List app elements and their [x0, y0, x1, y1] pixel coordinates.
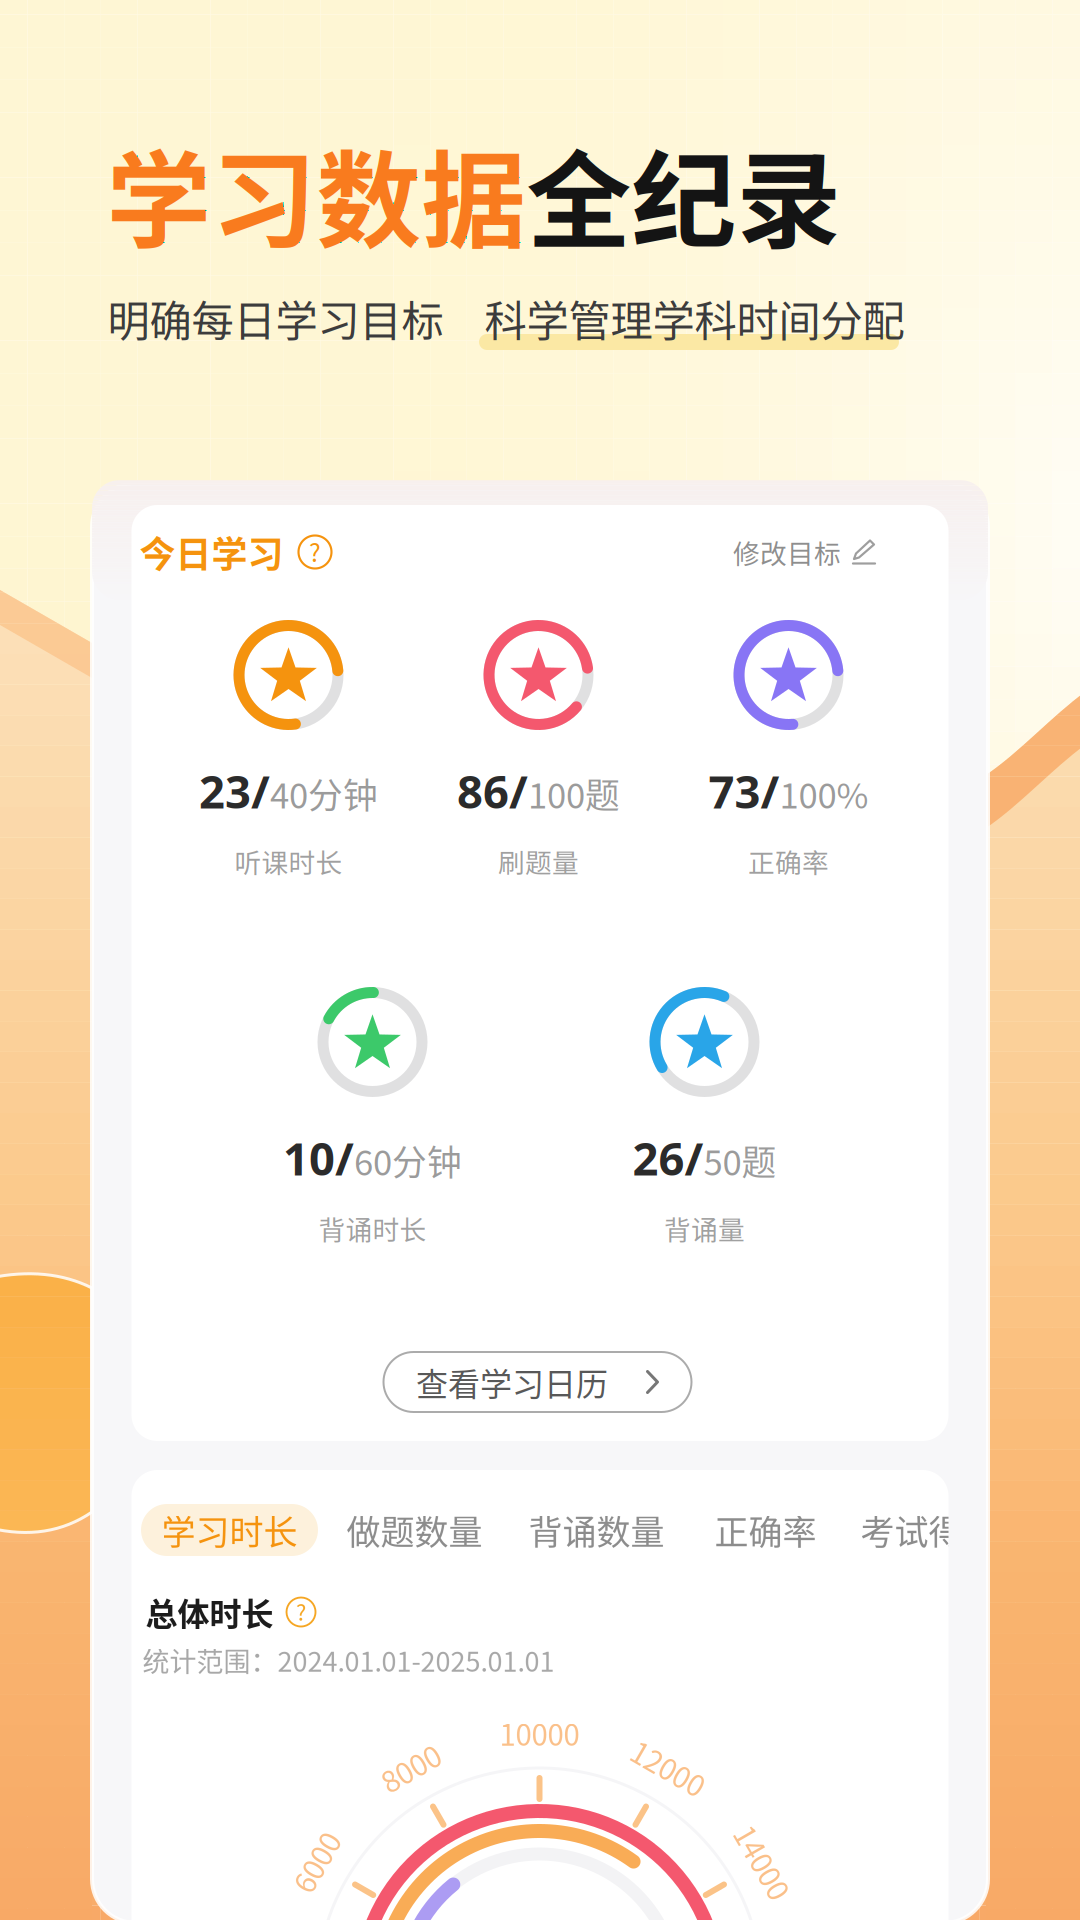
staticText: 8000	[378, 1746, 442, 1789]
staticText: 科学管理学科时间分配	[484, 287, 904, 349]
staticText: 统计范围：2024.01.01-2025.01.01	[142, 1640, 554, 1679]
staticText: 12000	[628, 1746, 708, 1789]
staticText: 明确每日学习目标	[107, 287, 443, 349]
staticText: 正确率	[748, 842, 829, 880]
staticText: 26/	[632, 1128, 703, 1188]
staticText: 23/	[199, 761, 270, 821]
staticText: 60分钟	[354, 1135, 462, 1186]
staticText: 修改目标	[733, 533, 841, 571]
button[interactable]: 正确率	[714, 1504, 816, 1556]
staticText: 73/	[708, 761, 779, 821]
staticText: 40分钟	[270, 768, 378, 819]
staticText: 全纪录	[526, 117, 841, 269]
staticText: 总体时长	[145, 1589, 273, 1635]
staticText: 50题	[703, 1135, 776, 1186]
button[interactable]: 修改目标	[733, 527, 876, 577]
staticText: 10000	[499, 1712, 579, 1754]
button[interactable]: 学习时长	[141, 1504, 318, 1556]
staticText: 做题数量	[346, 1505, 482, 1555]
staticText: 学习时长	[161, 1505, 297, 1555]
staticText: 听课时长	[234, 842, 342, 880]
button[interactable]: 背诵数量	[528, 1504, 664, 1556]
staticText: ?	[296, 1596, 306, 1627]
button[interactable]: 今日学习	[139, 527, 331, 577]
staticText: 今日学习	[139, 526, 283, 578]
staticText: 100%	[779, 768, 868, 819]
staticText: 学习数据	[106, 117, 526, 269]
staticText: 背诵量	[664, 1209, 745, 1247]
staticText: ?	[309, 533, 321, 569]
staticText: 考试得	[860, 1505, 962, 1555]
button[interactable]: 查看学习日历	[383, 1352, 691, 1412]
button[interactable]: 考试得	[860, 1504, 962, 1556]
staticText: 14000	[723, 1841, 803, 1883]
staticText: 查看学习日历	[416, 1359, 608, 1405]
staticText: 背诵时长	[318, 1209, 426, 1247]
staticText: 6000	[284, 1841, 348, 1883]
staticText: 86/	[457, 761, 528, 821]
staticText: 100题	[528, 768, 620, 819]
staticText: 10/	[283, 1128, 354, 1188]
staticText: 刷题量	[498, 842, 579, 880]
staticText: 背诵数量	[528, 1505, 664, 1555]
button[interactable]: 做题数量	[346, 1504, 482, 1556]
staticText: 正确率	[714, 1505, 816, 1555]
